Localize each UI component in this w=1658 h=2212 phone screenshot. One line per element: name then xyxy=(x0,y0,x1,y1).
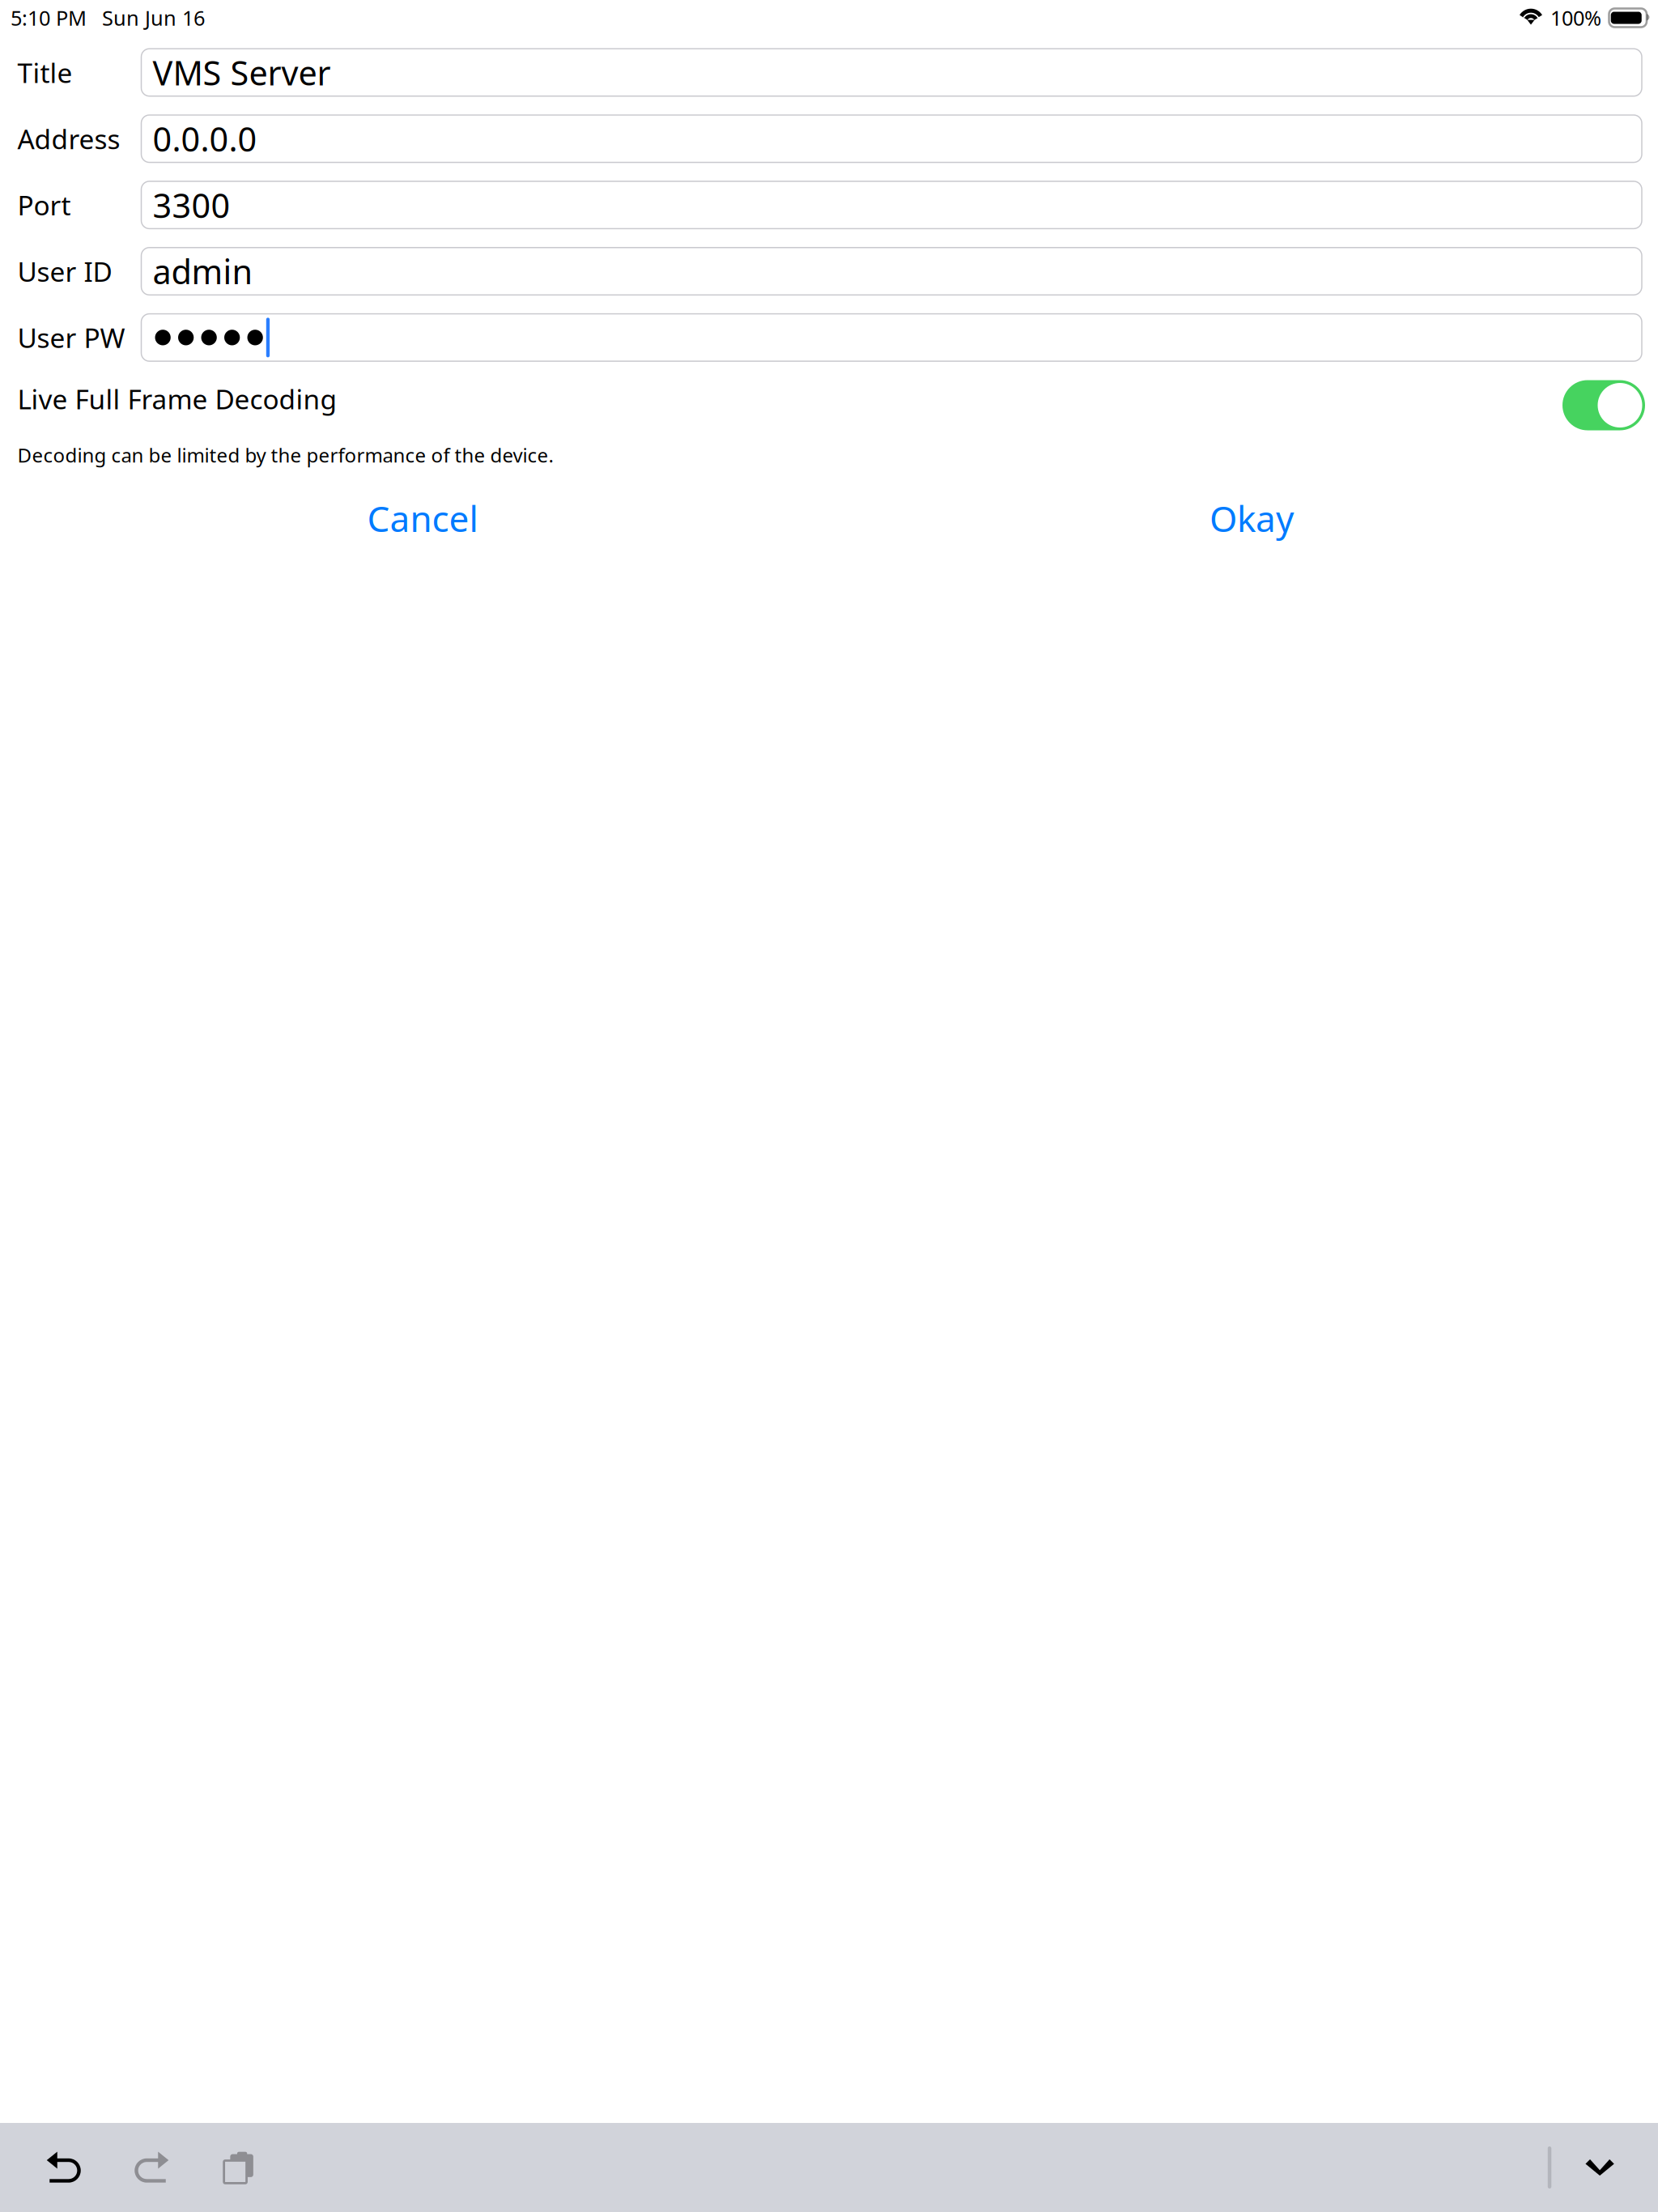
staticText: 0.0.0.0 xyxy=(153,117,257,161)
button[interactable]: Port xyxy=(0,181,1658,229)
staticText: Address xyxy=(17,121,120,157)
button[interactable]: Cancel xyxy=(0,475,829,543)
staticText: Cancel xyxy=(367,494,478,542)
button[interactable]: User ID xyxy=(0,248,1658,295)
staticText: Sun Jun 16 xyxy=(102,4,205,31)
staticText: 5:10 PM xyxy=(11,4,87,31)
button[interactable]: User PW xyxy=(0,314,1658,361)
staticText: Port xyxy=(17,187,71,223)
staticText: Live Full Frame Decoding xyxy=(17,381,337,417)
staticText: Title xyxy=(17,54,72,90)
staticText: Okay xyxy=(1209,494,1294,542)
button[interactable]: Redo xyxy=(108,2123,195,2212)
button[interactable]: Address xyxy=(0,115,1658,162)
button[interactable]: Okay xyxy=(829,475,1658,543)
staticText: User PW xyxy=(17,320,125,355)
button[interactable]: Paste xyxy=(195,2123,283,2212)
button[interactable]: Live Full Frame Decoding xyxy=(0,361,1658,449)
staticText: 100% xyxy=(1550,4,1601,31)
staticText: VMS Server xyxy=(153,50,331,95)
staticText: admin xyxy=(153,249,253,294)
staticText: Decoding can be limited by the performan… xyxy=(17,442,553,468)
button[interactable]: Hide keyboard xyxy=(1559,2123,1640,2212)
staticText: User ID xyxy=(17,253,112,289)
button[interactable]: Undo xyxy=(21,2123,108,2212)
staticText: 3300 xyxy=(153,183,230,227)
button[interactable]: Title xyxy=(0,49,1658,96)
